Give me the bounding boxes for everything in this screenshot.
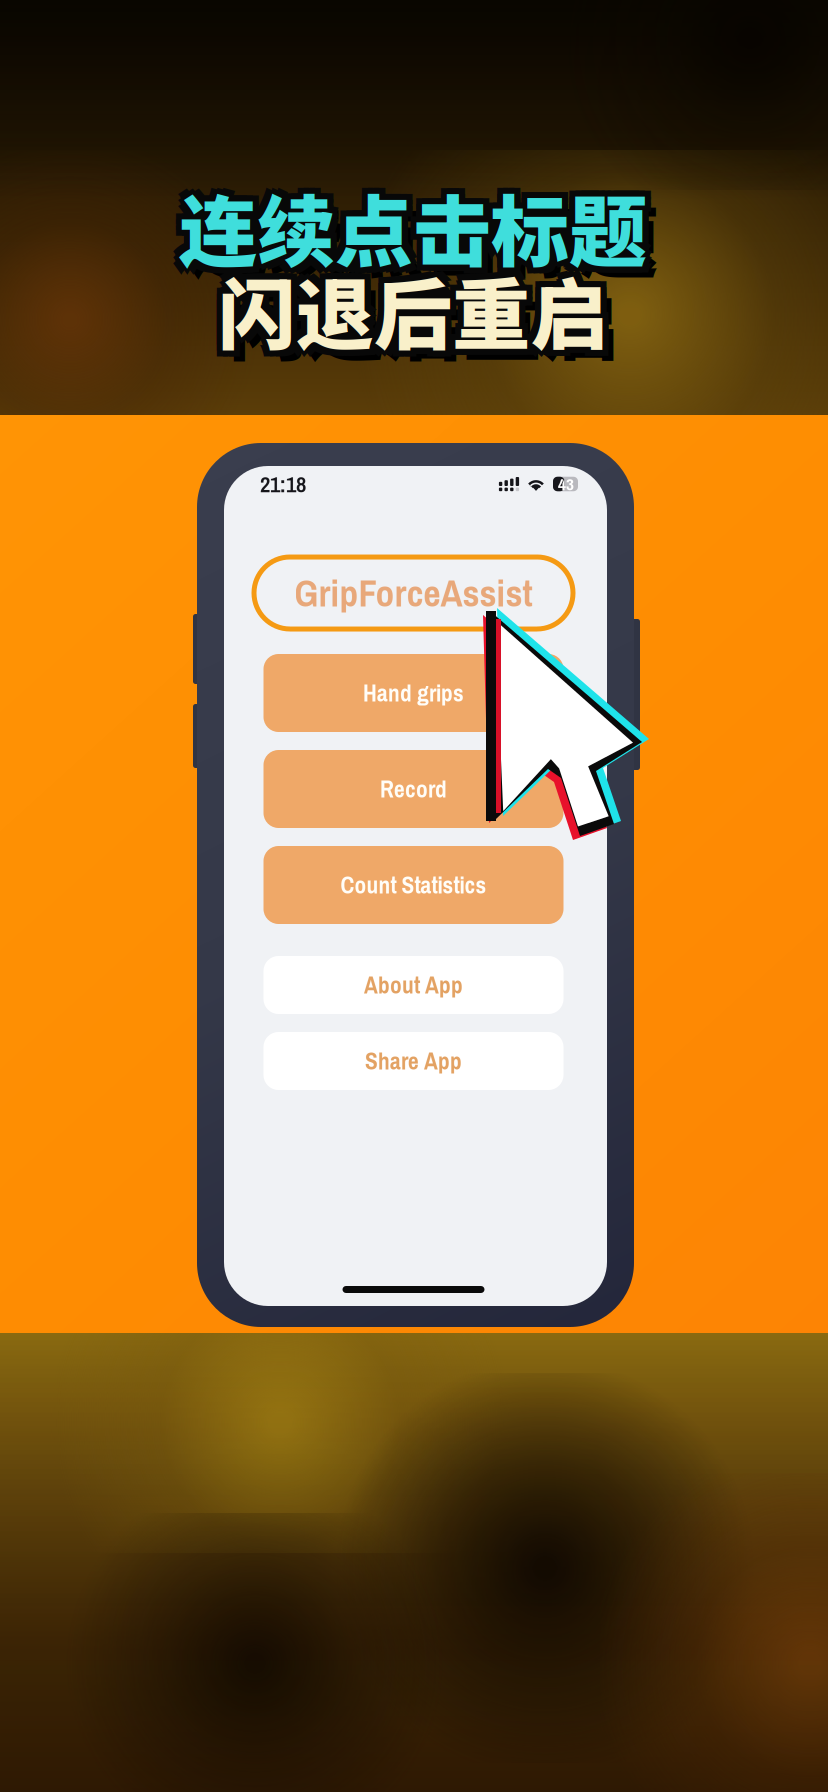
- staticText: 闪退后重启: [214, 250, 604, 363]
- staticText: 连续点击标题: [173, 176, 641, 289]
- button[interactable]: Record: [263, 750, 563, 828]
- staticText: 闪退后重启: [218, 253, 608, 366]
- staticText: 连续点击标题: [190, 181, 658, 294]
- staticText: GripForceAssist: [294, 568, 532, 618]
- staticText: 闪退后重启: [224, 247, 614, 360]
- staticText: 闪退后重启: [229, 264, 619, 377]
- staticText: Record: [380, 773, 447, 805]
- staticText: Hand grips: [363, 677, 464, 709]
- staticText: 连续点击标题: [183, 173, 651, 286]
- staticText: 连续点击标题: [179, 176, 647, 289]
- staticText: 连续点击标题: [175, 167, 643, 280]
- staticText: 闪退后重启: [214, 256, 604, 369]
- staticText: 连续点击标题: [179, 170, 647, 283]
- staticText: About App: [364, 969, 463, 1001]
- staticText: 43: [558, 472, 574, 496]
- staticText: 连续点击标题: [175, 173, 643, 286]
- staticText: 闪退后重启: [218, 259, 608, 372]
- staticText: 闪退后重启: [222, 250, 612, 363]
- staticText: 连续点击标题: [173, 170, 641, 283]
- staticText: 连续点击标题: [185, 164, 653, 277]
- staticText: 连续点击标题: [185, 170, 653, 283]
- staticText: 连续点击标题: [173, 164, 641, 277]
- staticText: 闪退后重启: [212, 259, 602, 372]
- button[interactable]: Count Statistics: [263, 846, 563, 924]
- staticText: Share App: [365, 1045, 462, 1077]
- staticText: 闪退后重启: [224, 253, 614, 366]
- staticText: 闪退后重启: [222, 256, 612, 369]
- staticText: 闪退后重启: [224, 259, 614, 372]
- button[interactable]: About App: [263, 956, 563, 1014]
- staticText: Count Statistics: [340, 869, 486, 901]
- button[interactable]: GripForceAssist: [254, 557, 573, 629]
- button[interactable]: Hand grips: [263, 654, 563, 732]
- staticText: 连续点击标题: [179, 164, 647, 277]
- staticText: 闪退后重启: [218, 247, 608, 360]
- button[interactable]: Share App: [263, 1032, 563, 1090]
- staticText: 闪退后重启: [212, 247, 602, 360]
- staticText: 连续点击标题: [183, 167, 651, 280]
- staticText: 闪退后重启: [212, 253, 602, 366]
- staticText: 21:18: [260, 469, 306, 499]
- staticText: 连续点击标题: [185, 176, 653, 289]
